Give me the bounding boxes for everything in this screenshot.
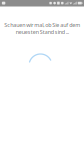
staticText: Schauen wir mal, ob Sie auf dem neuesten… (4, 21, 80, 36)
